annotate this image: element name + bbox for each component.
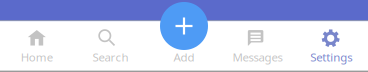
staticText: Messages	[233, 49, 283, 65]
button[interactable]: Settings	[294, 21, 368, 71]
staticText: Search	[92, 49, 128, 65]
button[interactable]: Messages	[221, 21, 294, 71]
staticText: Settings	[310, 49, 352, 65]
button[interactable]: Add	[147, 21, 221, 71]
staticText: Add	[173, 49, 194, 65]
button[interactable]: Home	[0, 21, 74, 71]
button[interactable]: Search	[74, 21, 147, 71]
button[interactable]: Add	[160, 2, 208, 50]
staticText: Home	[21, 49, 53, 65]
